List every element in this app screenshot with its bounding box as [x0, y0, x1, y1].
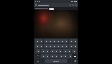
- button[interactable]: [50, 54, 54, 58]
- button[interactable]: [63, 49, 67, 53]
- button[interactable]: Space: [45, 59, 67, 63]
- button[interactable]: [60, 39, 64, 43]
- button[interactable]: [35, 39, 39, 43]
- button[interactable]: [39, 44, 43, 48]
- button[interactable]: [67, 49, 71, 53]
- button[interactable]: Backspace: [72, 54, 77, 58]
- button[interactable]: [59, 54, 63, 58]
- button[interactable]: [69, 39, 73, 43]
- button[interactable]: [58, 49, 62, 53]
- button[interactable]: [48, 44, 52, 48]
- button[interactable]: [64, 39, 68, 43]
- button[interactable]: [54, 49, 58, 53]
- button[interactable]: [52, 44, 56, 48]
- button[interactable]: Enter: [72, 59, 77, 63]
- button[interactable]: [50, 49, 54, 53]
- button[interactable]: [63, 54, 67, 58]
- button[interactable]: [41, 54, 45, 58]
- button[interactable]: [56, 44, 60, 48]
- button[interactable]: [45, 49, 49, 53]
- button[interactable]: Symbols: [35, 59, 40, 63]
- button[interactable]: [60, 44, 64, 48]
- button[interactable]: [48, 39, 52, 43]
- button[interactable]: [52, 39, 56, 43]
- button[interactable]: [64, 44, 68, 48]
- button[interactable]: [54, 54, 58, 58]
- button[interactable]: [68, 54, 72, 58]
- button[interactable]: [56, 39, 60, 43]
- button[interactable]: [41, 49, 45, 53]
- button[interactable]: [35, 8, 48, 9]
- button[interactable]: [35, 44, 39, 48]
- button[interactable]: [49, 8, 54, 10]
- button[interactable]: [73, 44, 77, 48]
- button[interactable]: [39, 39, 43, 43]
- button[interactable]: [72, 49, 76, 53]
- button[interactable]: [73, 39, 77, 43]
- button[interactable]: [69, 44, 73, 48]
- button[interactable]: Back: [35, 4, 37, 6]
- button[interactable]: [44, 39, 48, 43]
- button[interactable]: [45, 54, 49, 58]
- button[interactable]: Back: [34, 3, 78, 7]
- button[interactable]: Shift: [35, 54, 40, 58]
- button[interactable]: [44, 44, 48, 48]
- button[interactable]: [36, 49, 40, 53]
